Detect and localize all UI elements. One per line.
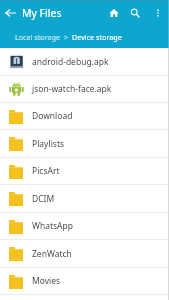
staticText: Download [32,110,73,122]
button[interactable]: PicsArt [0,158,169,185]
button[interactable]: Movies [0,268,169,295]
staticText: PicsArt [32,165,60,177]
button[interactable]: Playlists [0,130,169,158]
button[interactable]: Back [0,0,20,26]
button[interactable]: android-debug.apk [0,48,169,76]
staticText: Movies [32,275,61,287]
button[interactable]: Device storage [72,32,122,42]
staticText: DCIM [32,193,55,205]
button[interactable]: Search [124,0,145,26]
button[interactable]: DCIM [0,185,169,213]
button[interactable]: ZenWatch [0,240,169,268]
staticText: My Files [22,6,62,20]
button[interactable]: More options [147,0,168,26]
staticText: > [64,32,69,42]
button[interactable]: Home [103,0,124,26]
button[interactable]: Download [0,103,169,130]
staticText: json-watch-face.apk [32,83,112,95]
button[interactable]: WhatsApp [0,213,169,240]
button[interactable]: Local storage [15,32,61,42]
staticText: android-debug.apk [32,56,109,68]
staticText: WhatsApp [32,220,73,232]
staticText: Playlists [32,138,65,150]
button[interactable]: json-watch-face.apk [0,76,169,103]
staticText: ZenWatch [32,248,72,260]
